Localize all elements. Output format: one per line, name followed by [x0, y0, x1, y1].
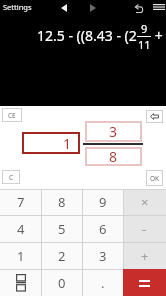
- staticText: 7: [17, 193, 25, 211]
- button[interactable]: 6: [82, 215, 123, 242]
- button[interactable]: 5: [41, 215, 82, 242]
- staticText: -: [142, 220, 147, 238]
- staticText: 3: [109, 122, 118, 141]
- staticText: C: [9, 173, 14, 182]
- button[interactable]: Undo: [131, 1, 145, 15]
- staticText: CE: [8, 111, 16, 120]
- staticText: Settings: [3, 2, 32, 12]
- button[interactable]: ×: [123, 189, 166, 215]
- staticText: 0: [58, 274, 66, 292]
- button[interactable]: 7: [0, 189, 41, 215]
- button[interactable]: 8: [41, 189, 82, 215]
- button[interactable]: +: [123, 242, 166, 269]
- button[interactable]: 4: [0, 215, 41, 242]
- staticText: OK: [150, 174, 160, 183]
- button[interactable]: .: [82, 269, 123, 296]
- button[interactable]: 3: [82, 242, 123, 269]
- staticText: 1: [17, 247, 25, 265]
- button[interactable]: CE: [2, 108, 22, 122]
- staticText: ×: [141, 193, 149, 211]
- button[interactable]: 2: [41, 242, 82, 269]
- staticText: 9: [141, 21, 148, 36]
- staticText: 12.5 - ((8.43 - (2: [37, 26, 137, 45]
- staticText: 6: [99, 220, 107, 238]
- staticText: 4: [17, 220, 25, 238]
- button[interactable]: Settings: [0, 0, 36, 14]
- button[interactable]: Next: [86, 1, 99, 14]
- button[interactable]: 1: [0, 242, 41, 269]
- button[interactable]: -: [123, 215, 166, 242]
- staticText: 8: [109, 147, 118, 166]
- button[interactable]: 3: [85, 121, 142, 142]
- button[interactable]: 9: [82, 189, 123, 215]
- button[interactable]: 1: [22, 132, 80, 154]
- staticText: +: [151, 26, 163, 45]
- button[interactable]: 8: [85, 147, 142, 166]
- staticText: 5: [58, 220, 66, 238]
- staticText: 3: [99, 247, 107, 265]
- button[interactable]: Menu: [151, 0, 166, 14]
- staticText: 8: [58, 193, 66, 211]
- staticText: 1: [63, 134, 72, 153]
- button[interactable]: Backspace: [146, 110, 163, 123]
- button[interactable]: 0: [41, 269, 82, 296]
- button[interactable]: OK: [146, 170, 163, 186]
- button[interactable]: C: [2, 170, 20, 184]
- staticText: 11: [138, 37, 151, 52]
- staticText: .: [101, 274, 105, 292]
- staticText: 2: [58, 247, 66, 265]
- staticText: 9: [99, 193, 107, 211]
- button[interactable]: Previous: [57, 1, 70, 14]
- button[interactable]: Fraction: [0, 269, 41, 296]
- staticText: +: [141, 247, 149, 265]
- button[interactable]: Equals: [123, 269, 166, 296]
